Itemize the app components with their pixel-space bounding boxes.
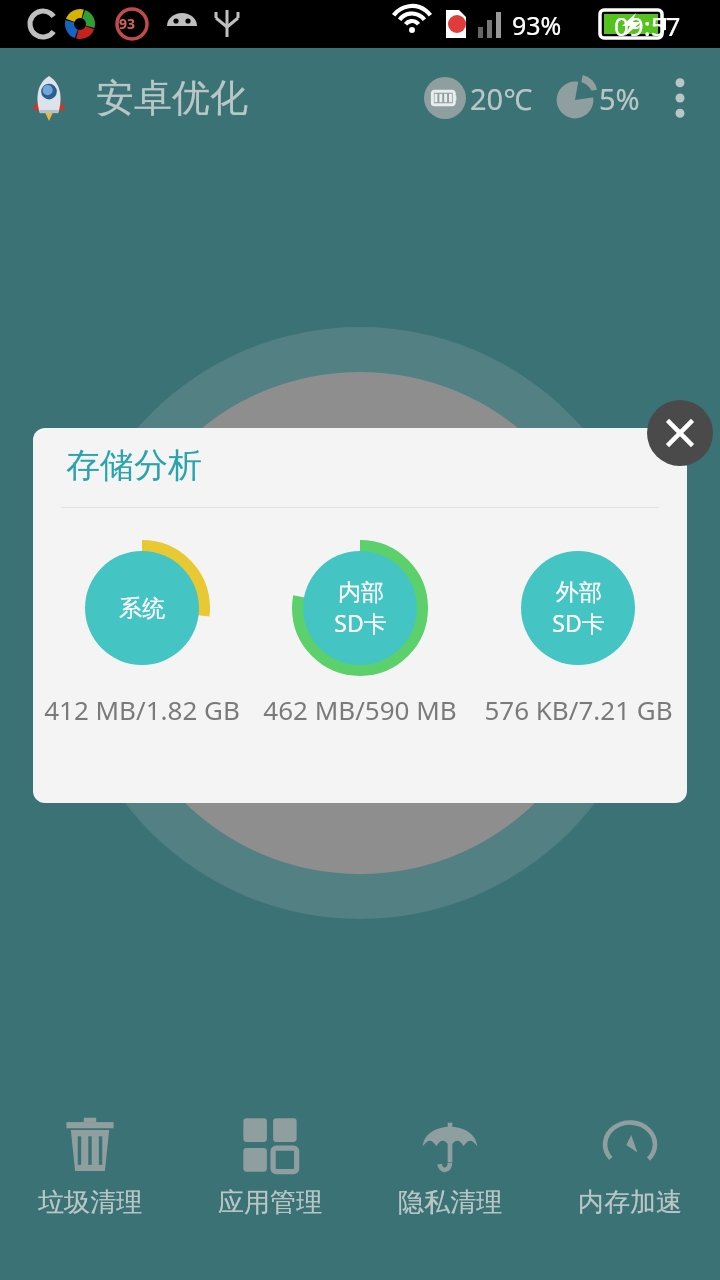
staticText: 外部 — [556, 578, 602, 607]
staticText: 412 MB/1.82 GB — [44, 692, 240, 727]
staticText: 内部 — [338, 578, 384, 607]
button[interactable]: 隐私清理 — [360, 1100, 540, 1240]
button[interactable]: 内部 — [251, 540, 469, 727]
button[interactable]: 存储分析 — [33, 428, 687, 803]
staticText: 576 KB/7.21 GB — [484, 692, 673, 727]
button[interactable]: Battery temperature — [420, 77, 537, 119]
button[interactable]: 应用管理 — [180, 1100, 360, 1240]
button[interactable]: Storage usage — [551, 78, 644, 118]
staticText: 09:57 — [614, 8, 681, 43]
button[interactable]: 内存加速 — [540, 1100, 720, 1240]
staticText: 隐私清理 — [398, 1186, 502, 1219]
staticText: 存储分析 — [66, 444, 202, 487]
staticText: 系统 — [119, 594, 165, 623]
staticText: 垃圾清理 — [38, 1186, 142, 1219]
button[interactable]: More options — [654, 48, 706, 148]
staticText: 20℃ — [470, 79, 533, 118]
staticText: 93 — [119, 14, 136, 33]
button[interactable]: 外部 — [469, 540, 687, 727]
staticText: 安卓优化 — [96, 74, 248, 122]
staticText: SD卡 — [552, 607, 605, 638]
staticText: 5% — [599, 79, 640, 118]
staticText: 93% — [512, 8, 562, 42]
button[interactable]: 垃圾清理 — [0, 1100, 180, 1240]
button[interactable]: Close — [647, 400, 713, 466]
other: Battery temperature — [424, 77, 466, 119]
staticText: SD卡 — [334, 607, 387, 638]
other: Storage usage — [555, 78, 595, 118]
staticText: 内存加速 — [578, 1186, 682, 1219]
staticText: 462 MB/590 MB — [263, 692, 457, 727]
staticText: 应用管理 — [218, 1186, 322, 1219]
button[interactable]: 系统 — [33, 540, 251, 727]
